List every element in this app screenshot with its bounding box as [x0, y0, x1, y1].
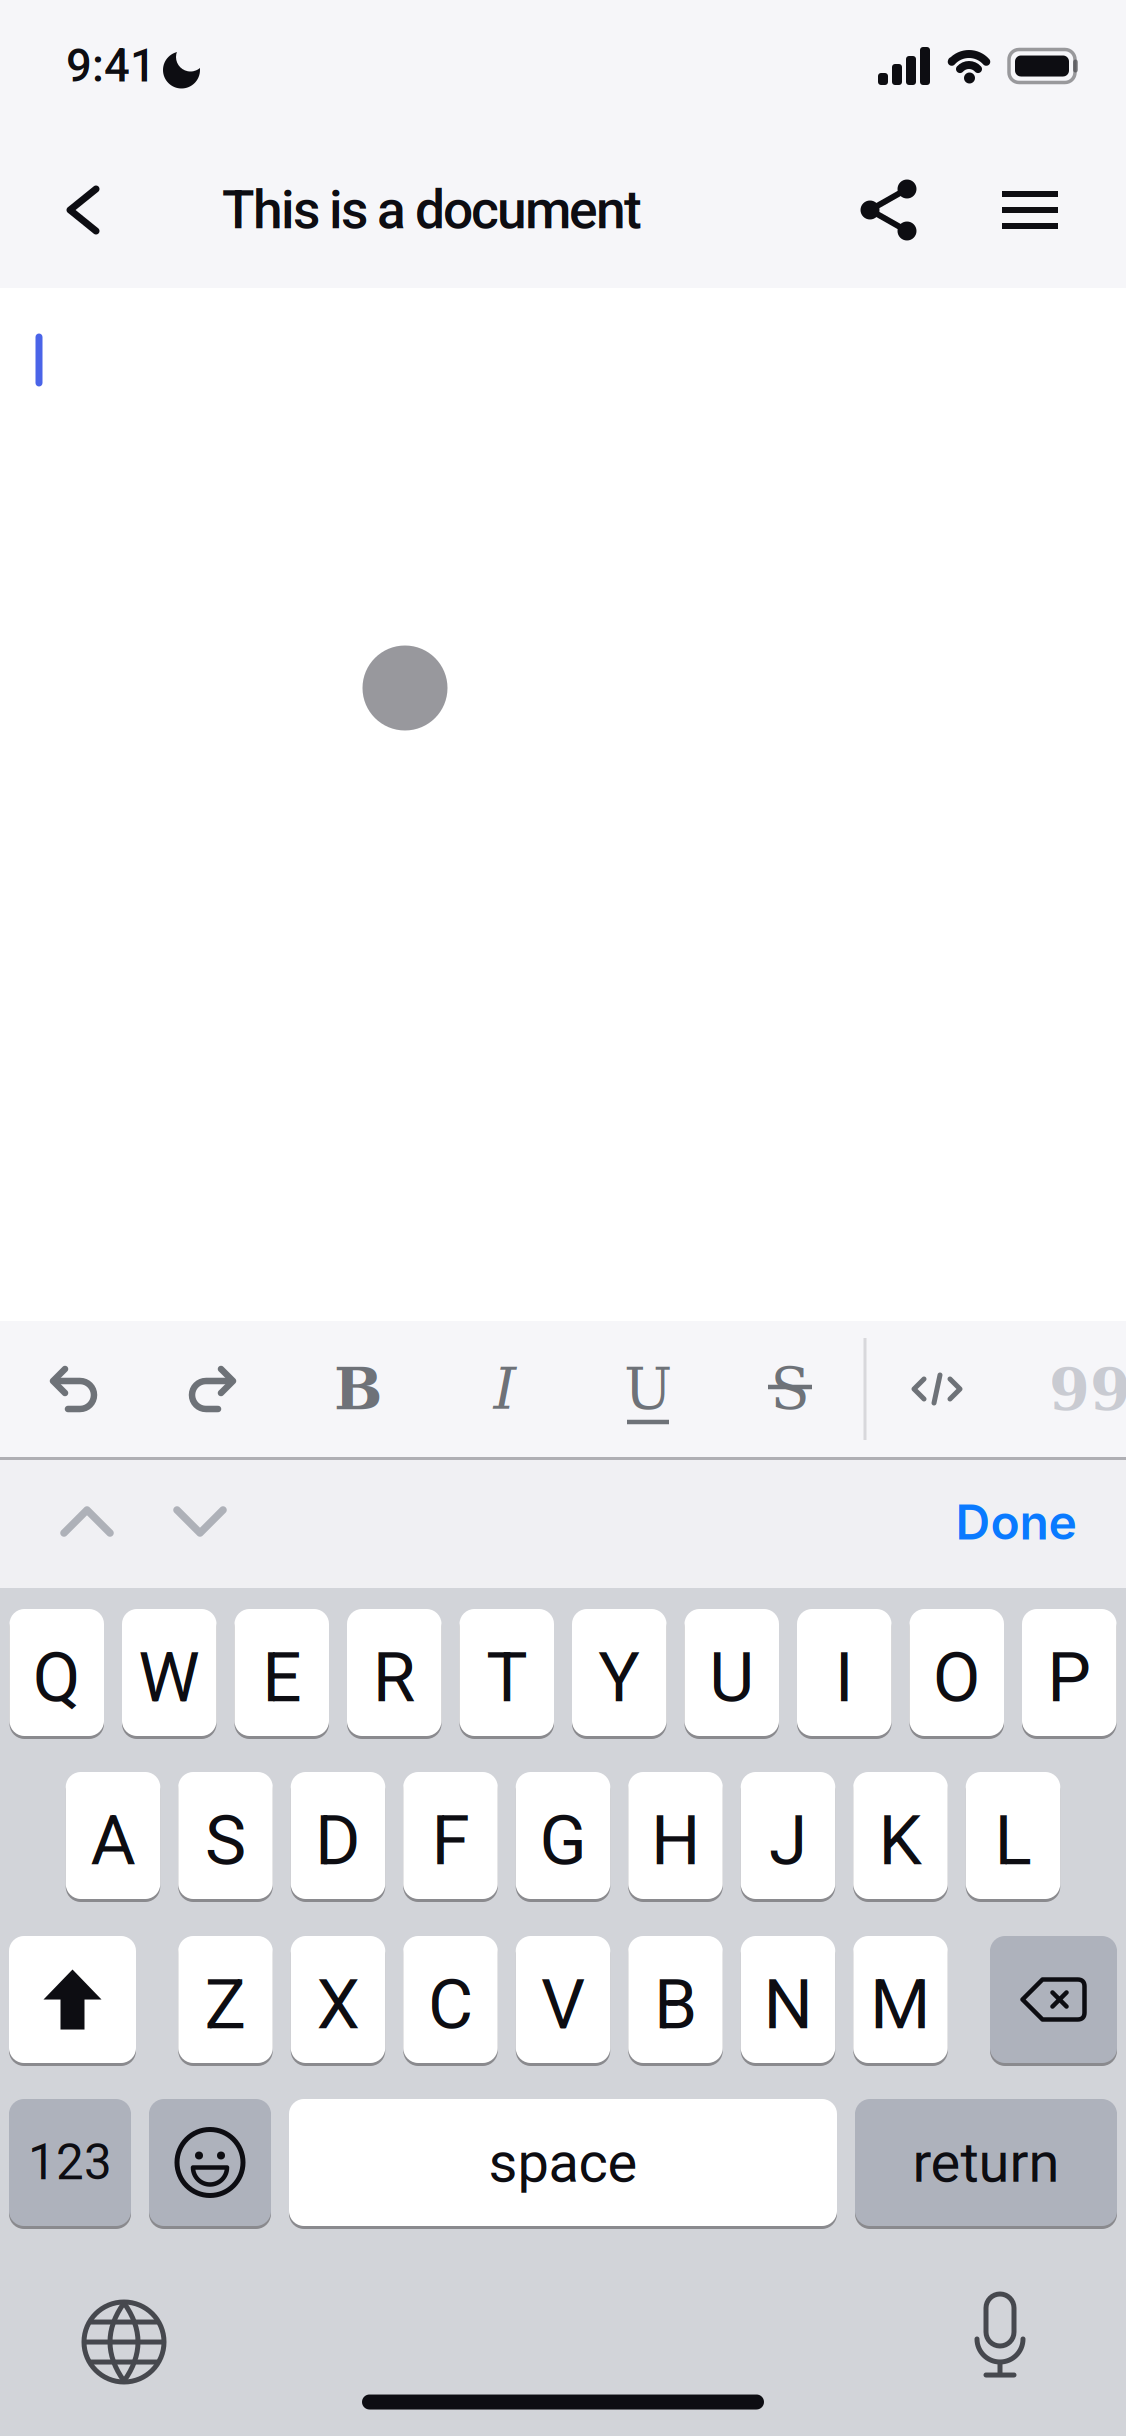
button[interactable]: O — [909, 1609, 1004, 1736]
staticText: return — [912, 2130, 1059, 2195]
button[interactable]: Y — [572, 1609, 666, 1736]
staticText: K — [878, 1800, 922, 1881]
staticText: Y — [598, 1637, 640, 1718]
button[interactable] — [0, 1321, 1126, 1457]
button[interactable]: U — [684, 1609, 779, 1736]
button[interactable] — [0, 186, 100, 234]
staticText: S — [770, 1356, 809, 1422]
staticText: S — [205, 1800, 246, 1881]
button[interactable]: I — [0, 1321, 1126, 1457]
button[interactable]: N — [741, 1936, 835, 2063]
button[interactable]: Q — [9, 1609, 104, 1736]
button[interactable] — [0, 1588, 1126, 2436]
staticText: P — [1047, 1637, 1091, 1718]
button[interactable]: return — [855, 2099, 1117, 2226]
button[interactable] — [990, 1936, 1117, 2063]
button[interactable]: K — [853, 1772, 948, 1899]
button[interactable] — [9, 1936, 136, 2063]
staticText: L — [994, 1800, 1031, 1881]
staticText: X — [316, 1964, 359, 2045]
button[interactable]: H — [628, 1772, 723, 1899]
button[interactable]: P — [1022, 1609, 1116, 1736]
staticText: B — [654, 1964, 697, 2045]
button[interactable]: Done — [0, 1460, 1126, 1588]
button[interactable] — [0, 1321, 1126, 1457]
button[interactable]: G — [516, 1772, 610, 1899]
button[interactable]: A — [66, 1772, 160, 1899]
staticText: Done — [955, 1493, 1076, 1551]
staticText: I — [493, 1356, 516, 1422]
staticText: T — [486, 1637, 527, 1718]
button[interactable] — [860, 180, 918, 240]
staticText: A — [90, 1800, 135, 1881]
staticText: This is a document — [222, 179, 642, 241]
button[interactable]: D — [291, 1772, 385, 1899]
staticText: U — [624, 1356, 672, 1422]
staticText: O — [933, 1637, 981, 1718]
staticText: F — [431, 1800, 469, 1881]
button[interactable]: R — [347, 1609, 441, 1736]
staticText: H — [651, 1800, 700, 1881]
button[interactable] — [0, 1460, 1126, 1588]
staticText: R — [373, 1637, 416, 1718]
button[interactable]: L — [966, 1772, 1060, 1899]
staticText: I — [835, 1637, 854, 1718]
button[interactable]: C — [403, 1936, 498, 2063]
staticText: 123 — [28, 2134, 112, 2191]
staticText: B — [334, 1355, 382, 1423]
button[interactable]: space — [289, 2099, 837, 2226]
button[interactable] — [149, 2099, 271, 2226]
staticText: D — [315, 1800, 361, 1881]
button[interactable]: B — [628, 1936, 723, 2063]
button[interactable]: Z — [178, 1936, 273, 2063]
button[interactable]: B — [0, 1321, 1126, 1457]
staticText: N — [763, 1964, 812, 2045]
staticText: 99 — [1049, 1354, 1126, 1423]
staticText: Z — [204, 1964, 246, 2045]
button[interactable]: F — [403, 1772, 498, 1899]
button[interactable]: S — [0, 1321, 1126, 1457]
staticText: C — [428, 1964, 473, 2045]
button[interactable] — [0, 1588, 1126, 2436]
button[interactable] — [0, 1460, 1126, 1588]
staticText: E — [262, 1637, 301, 1718]
button[interactable]: E — [234, 1609, 329, 1736]
staticText: V — [541, 1964, 585, 2045]
staticText: M — [870, 1964, 931, 2045]
button[interactable] — [0, 1321, 1126, 1457]
button[interactable]: 123 — [9, 2099, 131, 2226]
staticText: 9:41 — [66, 39, 156, 92]
staticText: Q — [33, 1637, 81, 1718]
staticText: G — [539, 1800, 586, 1881]
button[interactable]: T — [459, 1609, 554, 1736]
staticText: J — [769, 1800, 807, 1881]
button[interactable]: V — [516, 1936, 610, 2063]
button[interactable]: U — [0, 1321, 1126, 1457]
staticText: W — [138, 1637, 200, 1718]
staticText: U — [709, 1637, 754, 1718]
button[interactable] — [918, 191, 1058, 229]
button[interactable]: I — [797, 1609, 891, 1736]
button[interactable]: J — [741, 1772, 835, 1899]
button[interactable]: W — [122, 1609, 216, 1736]
button[interactable]: X — [291, 1936, 385, 2063]
button[interactable]: S — [178, 1772, 273, 1899]
button[interactable]: 99 — [0, 1321, 1126, 1457]
staticText: space — [488, 2130, 637, 2195]
button[interactable]: M — [853, 1936, 948, 2063]
